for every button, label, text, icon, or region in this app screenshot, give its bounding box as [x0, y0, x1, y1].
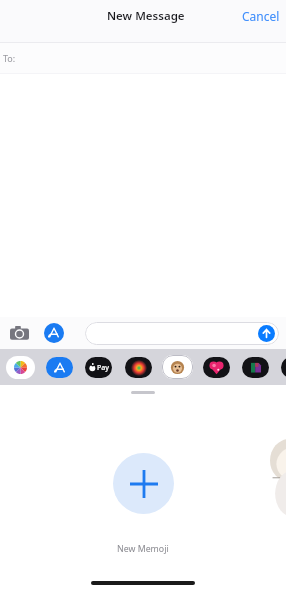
button[interactable]: [85, 322, 279, 345]
button[interactable]: Cancel: [236, 0, 286, 33]
button[interactable]: Apps: [43, 322, 65, 344]
staticText: Pay: [97, 363, 109, 373]
button[interactable]: Images: [200, 354, 232, 380]
staticText: New Message: [107, 8, 185, 24]
button[interactable]: Send: [257, 324, 275, 342]
button[interactable]: Music: [122, 354, 154, 380]
staticText: New Memoji: [117, 543, 169, 555]
button[interactable]: Apple Pay: [82, 354, 114, 380]
button[interactable]: Files: [239, 354, 271, 380]
staticText: Cancel: [242, 8, 280, 24]
button[interactable]: App Store: [43, 354, 75, 380]
button[interactable]: Memoji: [161, 354, 193, 380]
button[interactable]: Photos: [4, 354, 36, 380]
button[interactable]: New Memoji: [113, 453, 174, 514]
button[interactable]: To:: [0, 43, 286, 74]
staticText: To:: [3, 52, 16, 64]
button[interactable]: More: [278, 354, 286, 380]
button[interactable]: Take photo: [6, 321, 33, 345]
